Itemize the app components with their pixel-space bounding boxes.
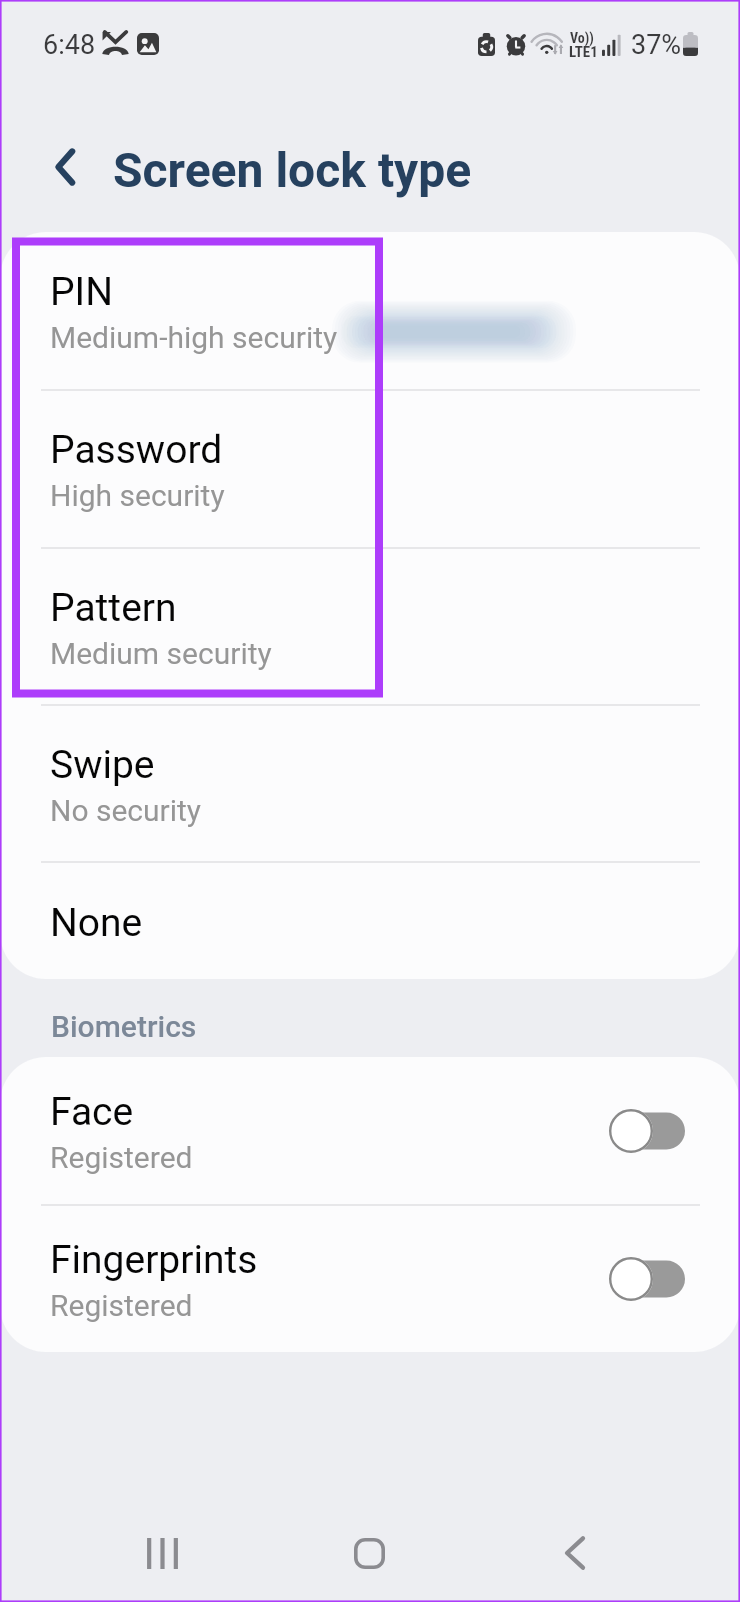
staticText: Medium-high security — [50, 320, 338, 355]
button[interactable]: Face — [0, 1057, 740, 1205]
staticText: Fingerprints — [50, 1237, 258, 1283]
button[interactable]: Recent apps — [120, 1513, 200, 1593]
staticText: Face — [50, 1089, 134, 1135]
button[interactable]: Home — [329, 1513, 409, 1593]
staticText: Swipe — [50, 742, 155, 788]
button[interactable]: Navigate up — [38, 140, 92, 194]
button[interactable]: Fingerprints switch — [604, 1251, 690, 1307]
staticText: 37% — [631, 29, 682, 61]
button[interactable]: Fingerprints — [0, 1205, 740, 1352]
staticText: None — [50, 900, 143, 946]
staticText: Registered — [50, 1288, 193, 1323]
button[interactable]: Pattern — [0, 548, 740, 705]
button[interactable]: Password — [0, 390, 740, 548]
staticText: LTE1 — [569, 43, 598, 61]
staticText: No security — [50, 793, 202, 828]
button[interactable]: None — [0, 862, 740, 979]
staticText: Biometrics — [51, 1009, 197, 1044]
staticText: Registered — [50, 1140, 193, 1175]
staticText: Medium security — [50, 636, 272, 671]
staticText: 6:48 — [43, 29, 96, 61]
button[interactable]: Swipe — [0, 705, 740, 862]
button[interactable]: Back — [535, 1513, 615, 1593]
staticText: Pattern — [50, 585, 177, 631]
staticText: Vo)) — [570, 30, 594, 46]
staticText: Screen lock type — [113, 142, 472, 198]
button[interactable]: PIN — [0, 232, 740, 390]
staticText: Password — [50, 427, 223, 473]
button[interactable]: Face switch — [604, 1103, 690, 1159]
staticText: PIN — [50, 269, 114, 315]
staticText: High security — [50, 478, 225, 513]
